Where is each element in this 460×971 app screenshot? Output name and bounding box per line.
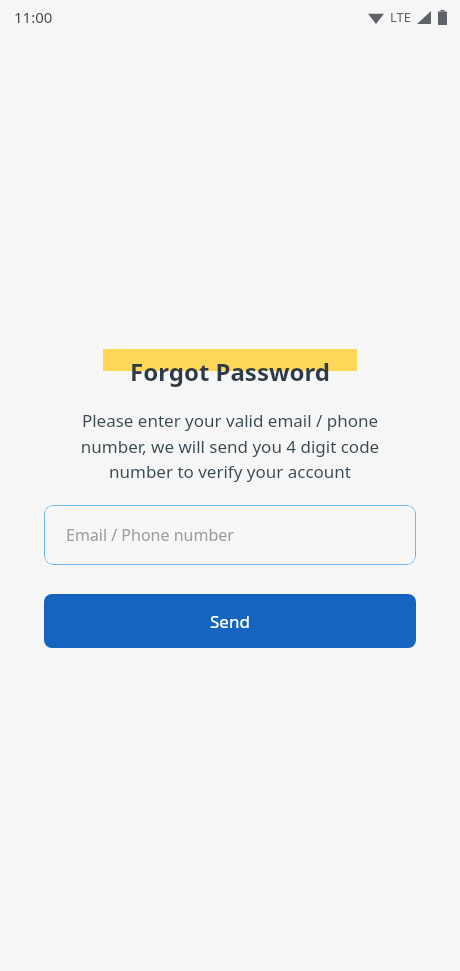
staticText: Please enter your valid email / phone nu…	[48, 409, 412, 483]
button[interactable]: Send	[44, 594, 416, 648]
staticText: Email / Phone number	[66, 524, 234, 546]
staticText: 11:00	[14, 7, 53, 27]
staticText: LTE	[390, 8, 412, 26]
staticText: Send	[210, 610, 250, 633]
staticText: Forgot Password	[130, 355, 330, 388]
button[interactable]: Email / Phone number	[44, 505, 416, 565]
